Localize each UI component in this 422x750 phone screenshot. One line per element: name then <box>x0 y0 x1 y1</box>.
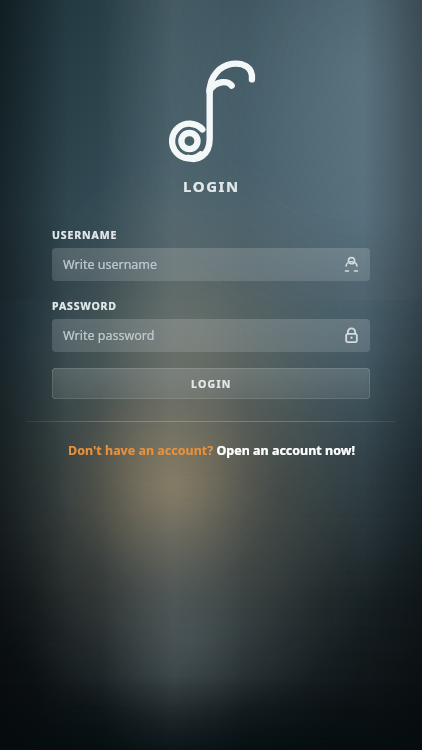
button[interactable]: Write password <box>52 319 370 352</box>
staticText: Don't have an account? Open an account n… <box>68 442 355 459</box>
staticText: Write username <box>63 256 344 273</box>
button[interactable]: Don't have an account? Open an account n… <box>0 440 422 461</box>
staticText: PASSWORD <box>52 299 117 313</box>
button[interactable]: LOGIN <box>52 368 370 399</box>
button[interactable]: Write username <box>52 248 370 281</box>
staticText: USERNAME <box>52 228 118 242</box>
staticText: Write password <box>63 327 344 344</box>
staticText: LOGIN <box>183 176 240 196</box>
other: Password <box>344 327 359 344</box>
other: Username <box>344 256 359 273</box>
staticText: LOGIN <box>191 377 232 391</box>
